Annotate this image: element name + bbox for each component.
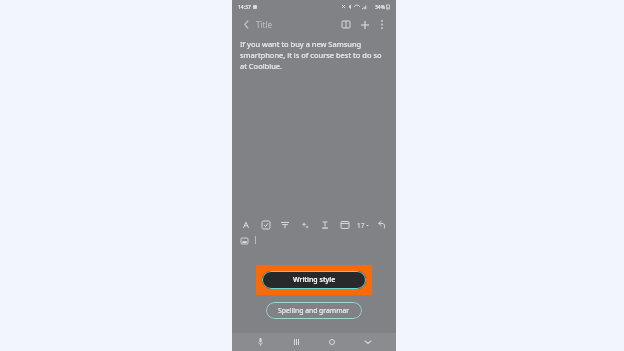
button[interactable]: Back bbox=[239, 17, 253, 31]
staticText: 14:37 bbox=[238, 4, 251, 11]
button[interactable]: Home bbox=[324, 334, 340, 350]
button[interactable]: Spelling and grammar bbox=[266, 302, 362, 319]
button[interactable]: Writing style bbox=[262, 271, 366, 289]
button[interactable]: Align bbox=[278, 218, 292, 232]
button[interactable]: AI assist bbox=[298, 218, 312, 232]
staticText: Spelling and grammar bbox=[278, 306, 350, 315]
staticText: 34% bbox=[375, 4, 385, 11]
staticText: Writing style bbox=[293, 275, 336, 285]
button[interactable]: Undo bbox=[375, 218, 389, 232]
button[interactable]: Text color bbox=[318, 218, 332, 232]
staticText: If you want to buy a new Samsung smartph… bbox=[240, 39, 386, 71]
staticText: Title bbox=[256, 19, 272, 30]
button[interactable]: Voice input bbox=[252, 334, 268, 350]
staticText: 17 bbox=[357, 221, 365, 230]
button[interactable]: Checklist bbox=[259, 218, 273, 232]
button[interactable]: Book view bbox=[338, 17, 353, 32]
button[interactable]: More options bbox=[375, 17, 389, 31]
button[interactable]: 17 bbox=[357, 218, 369, 232]
button[interactable]: Recent apps bbox=[288, 334, 304, 350]
button[interactable]: Text style bbox=[239, 218, 253, 232]
button[interactable]: Hide keyboard bbox=[360, 334, 376, 350]
button[interactable]: Add bbox=[357, 17, 372, 32]
button[interactable]: Table bbox=[338, 218, 352, 232]
button[interactable]: Insert image bbox=[239, 235, 250, 246]
